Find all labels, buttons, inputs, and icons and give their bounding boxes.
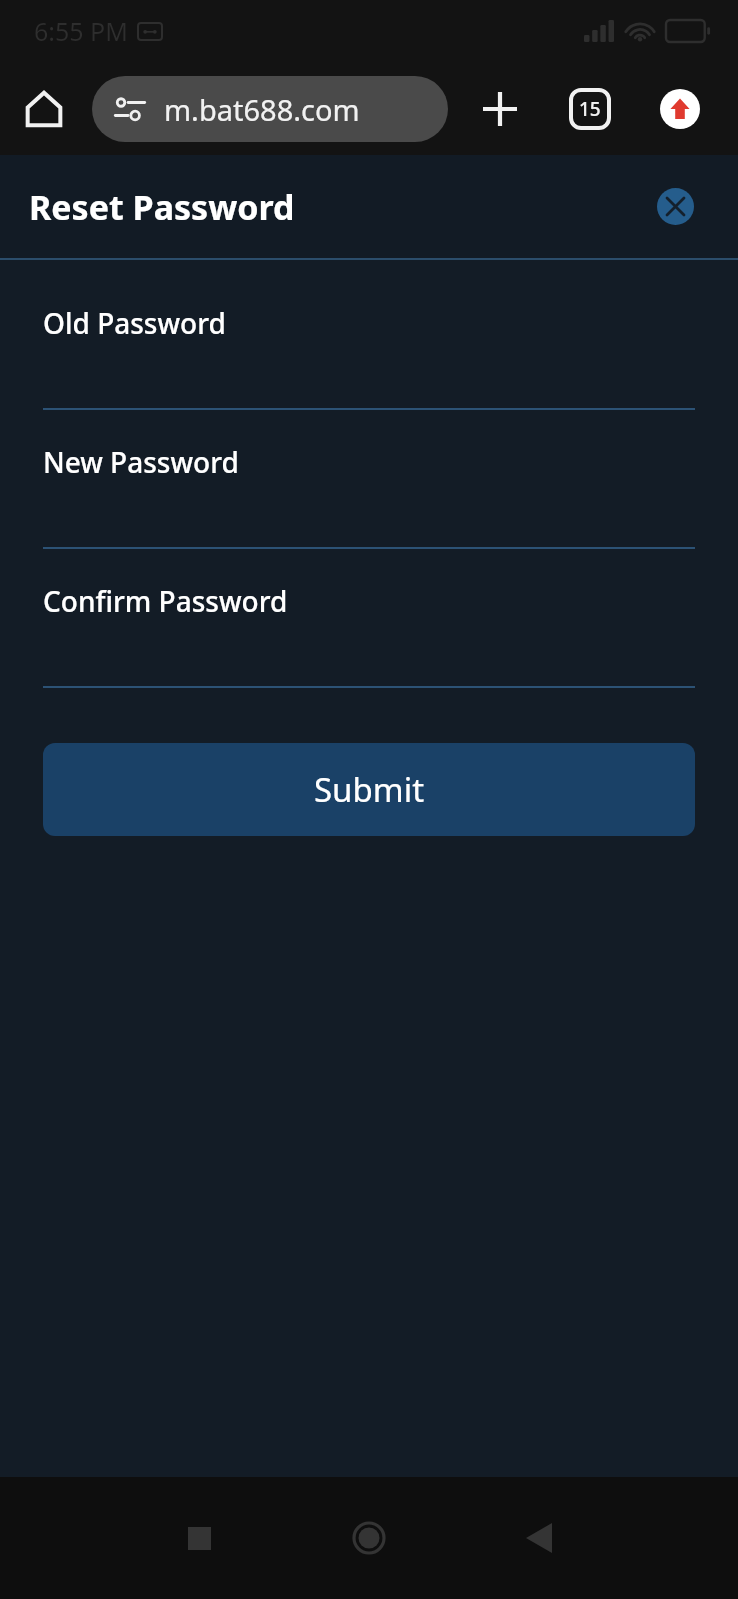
button[interactable]: Back — [454, 1477, 624, 1599]
button[interactable]: Tabs, 15 open — [558, 77, 622, 141]
button[interactable]: New Password — [0, 443, 738, 582]
button[interactable]: Close — [657, 188, 694, 225]
button[interactable]: Old Password — [0, 304, 738, 443]
staticText: Submit — [314, 767, 425, 812]
button[interactable]: m.bat688.com — [92, 76, 448, 142]
button[interactable]: Submit — [43, 743, 695, 836]
button[interactable]: Home — [12, 77, 76, 141]
button[interactable]: Confirm Password — [0, 582, 738, 721]
staticText: Confirm Password — [43, 582, 288, 620]
staticText: m.bat688.com — [164, 90, 360, 129]
button[interactable]: New tab — [468, 77, 532, 141]
staticText: Reset Password — [29, 184, 295, 230]
staticText: 15 — [579, 96, 601, 122]
staticText: Old Password — [43, 304, 226, 342]
button[interactable]: Update available — [648, 77, 712, 141]
button[interactable]: Home — [284, 1477, 454, 1599]
staticText: New Password — [43, 443, 239, 481]
button[interactable]: Recent apps — [114, 1477, 284, 1599]
staticText: 6:55 PM — [34, 14, 128, 48]
